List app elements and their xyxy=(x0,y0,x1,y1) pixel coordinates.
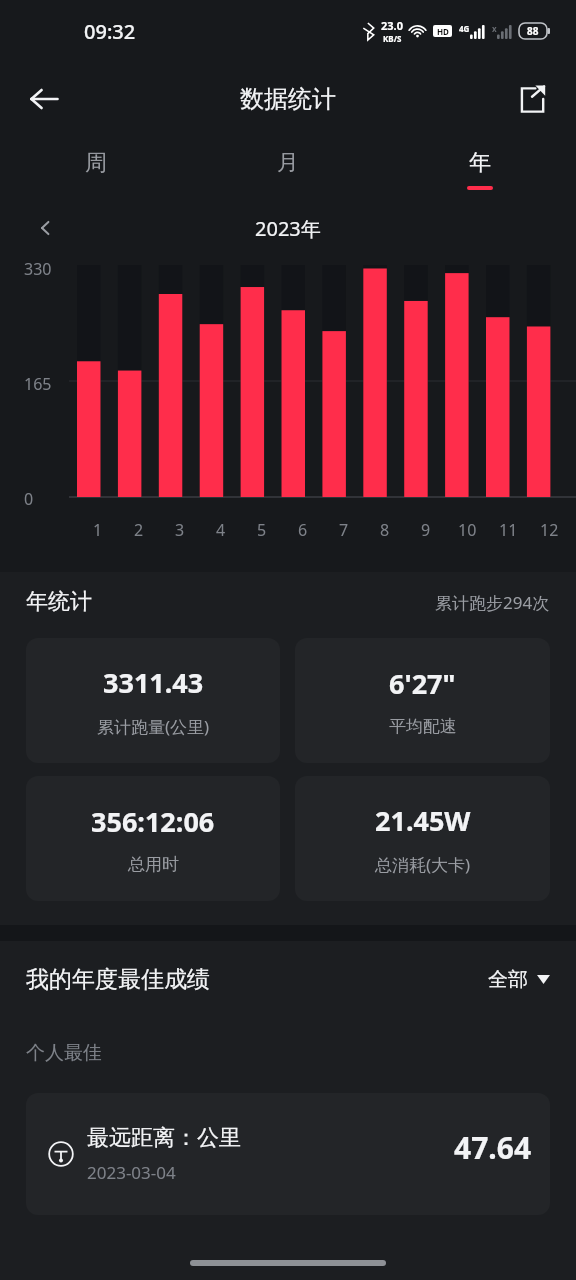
staticText: 全部 xyxy=(488,967,528,992)
staticText: 月 xyxy=(277,149,299,177)
staticText: 6'27" xyxy=(389,665,456,702)
staticText: 12 xyxy=(540,519,559,541)
staticText: 88 xyxy=(527,24,539,38)
button[interactable]: 356:12:06 xyxy=(26,776,280,901)
staticText: 年统计 xyxy=(26,588,92,616)
staticText: 累计跑量(公里) xyxy=(97,715,210,738)
staticText: 0 xyxy=(24,488,34,510)
staticText: 5 xyxy=(257,519,267,541)
staticText: 平均配速 xyxy=(389,716,457,737)
staticText: 4 xyxy=(216,519,226,541)
staticText: 累计跑步294次 xyxy=(435,591,550,614)
button[interactable]: 6'27" xyxy=(295,638,550,763)
staticText: 09:32 xyxy=(84,18,136,45)
staticText: 21.45W xyxy=(375,802,471,839)
staticText: 4G xyxy=(459,23,470,34)
staticText: 个人最佳 xyxy=(26,1041,102,1065)
button[interactable]: 月 xyxy=(192,136,384,202)
staticText: 47.64 xyxy=(454,1127,532,1168)
staticText: 3311.43 xyxy=(103,664,204,701)
button[interactable]: Share xyxy=(506,73,558,125)
staticText: 8 xyxy=(380,519,390,541)
button[interactable]: 周 xyxy=(0,136,192,202)
staticText: 数据统计 xyxy=(240,84,336,114)
button[interactable]: 最远距离：公里 xyxy=(26,1093,550,1215)
staticText: HD xyxy=(437,26,449,37)
staticText: 1 xyxy=(93,519,103,541)
button[interactable]: 全部 xyxy=(488,967,550,992)
button[interactable]: 年 xyxy=(384,136,576,202)
button[interactable]: 3311.43 xyxy=(26,638,280,763)
staticText: 23.0 xyxy=(381,18,403,33)
staticText: 9 xyxy=(421,519,431,541)
staticText: 11 xyxy=(499,519,518,541)
staticText: 7 xyxy=(339,519,349,541)
staticText: 我的年度最佳成绩 xyxy=(26,965,210,994)
staticText: 周 xyxy=(85,149,107,177)
staticText: 年 xyxy=(469,149,491,177)
staticText: 6 xyxy=(298,519,308,541)
button[interactable]: 21.45W xyxy=(295,776,550,901)
staticText: 2023-03-04 xyxy=(87,1161,176,1184)
staticText: 165 xyxy=(24,373,52,395)
staticText: KB/S xyxy=(383,33,402,44)
button[interactable]: Previous year xyxy=(26,208,66,248)
staticText: x xyxy=(492,23,497,34)
staticText: 356:12:06 xyxy=(91,803,215,840)
staticText: 总消耗(大卡) xyxy=(375,853,471,876)
staticText: 2 xyxy=(134,519,144,541)
staticText: 2023年 xyxy=(255,215,321,242)
staticText: 最远距离：公里 xyxy=(87,1124,241,1152)
staticText: 3 xyxy=(175,519,185,541)
staticText: 10 xyxy=(458,519,477,541)
button[interactable]: Back xyxy=(18,73,70,125)
staticText: 330 xyxy=(24,258,52,280)
staticText: 总用时 xyxy=(128,854,179,875)
